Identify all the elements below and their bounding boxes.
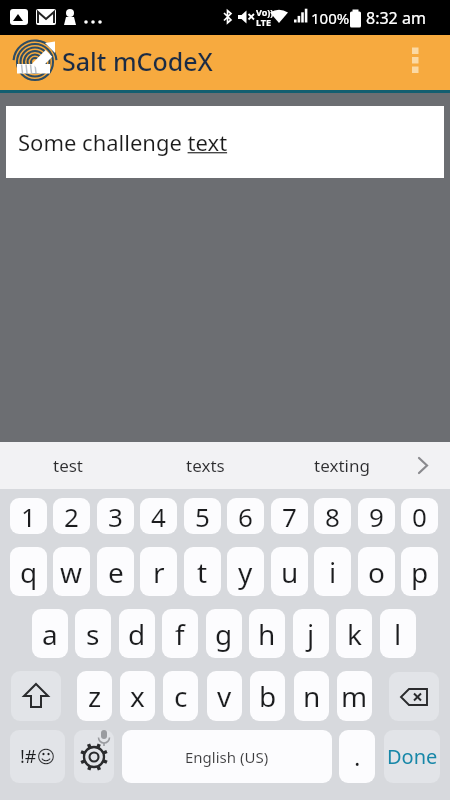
staticText: d [128,615,146,653]
staticText: c [174,677,188,715]
staticText: texts [186,454,225,477]
button[interactable]: 6 [227,498,264,534]
staticText: 2 [64,499,79,534]
button[interactable]: d [119,609,155,658]
staticText: a [42,615,58,653]
button[interactable] [0,35,450,90]
staticText: texting [314,454,370,477]
staticText: 5 [195,499,210,534]
button[interactable]: 1 [10,498,47,534]
staticText: r [153,553,165,591]
button[interactable]: 8 [314,498,351,534]
staticText: x [130,677,145,715]
button[interactable]: 2 [53,498,90,534]
staticText: z [88,677,102,715]
button[interactable]: q [10,547,47,596]
button[interactable]: f [162,609,198,658]
button[interactable] [74,730,114,783]
button[interactable]: b [250,671,285,721]
button[interactable]: g [206,609,242,658]
button[interactable]: t [184,547,221,596]
button[interactable]: Done [384,730,440,783]
staticText: h [258,615,276,653]
staticText: p [411,553,429,591]
staticText: Vo)) [256,6,274,18]
button[interactable]: 0 [401,498,438,534]
staticText: q [20,553,38,591]
button[interactable]: 5 [184,498,221,534]
staticText: 7 [282,499,297,534]
staticText: 0 [412,499,427,534]
staticText: 6 [238,499,253,534]
staticText: w [60,553,83,591]
staticText: v [217,677,232,715]
staticText: i [329,553,337,591]
button[interactable] [405,442,445,489]
staticText: !#☺ [20,744,56,769]
button[interactable]: k [336,609,372,658]
button[interactable]: 4 [140,498,177,534]
button[interactable]: Some challenge text [6,106,444,178]
staticText: 8:32 am [366,7,426,29]
button[interactable]: x [120,671,155,721]
staticText: Done [387,743,438,770]
button[interactable]: a [32,609,68,658]
staticText: English (US) [185,747,269,767]
staticText: y [238,553,253,591]
button[interactable]: n [294,671,329,721]
staticText: 1 [21,499,36,534]
staticText: l [394,615,402,653]
staticText: g [215,615,233,653]
button[interactable]: e [97,547,134,596]
staticText: e [108,553,124,591]
staticText: b [259,677,277,715]
button[interactable]: c [163,671,198,721]
staticText: f [175,615,185,653]
button[interactable]: r [140,547,177,596]
staticText: 8 [325,499,340,534]
button[interactable]: v [207,671,242,721]
staticText: test [53,454,84,477]
staticText: s [86,615,100,653]
button[interactable]: !#☺ [10,730,65,783]
button[interactable]: s [75,609,111,658]
button[interactable]: z [77,671,112,721]
button[interactable] [400,40,432,85]
staticText: o [368,553,385,591]
button[interactable]: h [249,609,285,658]
staticText: 9 [369,499,384,534]
button[interactable]: o [358,547,395,596]
staticText: u [281,553,299,591]
button[interactable]: test [20,442,116,489]
staticText: n [303,677,321,715]
staticText: j [307,615,315,653]
button[interactable]: m [337,671,372,721]
button[interactable] [389,672,439,721]
button[interactable]: texts [157,442,253,489]
staticText: LTE [256,16,272,28]
button[interactable]: 3 [97,498,134,534]
button[interactable]: . [339,730,375,783]
button[interactable]: l [380,609,416,658]
button[interactable]: i [314,547,351,596]
button[interactable]: w [53,547,90,596]
button[interactable]: 7 [271,498,308,534]
button[interactable]: j [293,609,329,658]
button[interactable]: texting [294,442,390,489]
button[interactable]: u [271,547,308,596]
staticText: Salt mCodeX [62,44,213,78]
button[interactable]: p [401,547,438,596]
button[interactable]: 9 [358,498,395,534]
staticText: . [354,740,361,773]
button[interactable] [8,39,56,87]
staticText: t [197,553,208,591]
staticText: 3 [108,499,123,534]
staticText: Some challenge text [18,127,228,157]
staticText: 4 [151,499,166,534]
button[interactable] [11,671,61,721]
button[interactable]: y [227,547,264,596]
button[interactable]: English (US) [122,730,332,783]
staticText: 100% [311,8,350,28]
staticText: k [347,615,362,653]
staticText: m [341,677,368,715]
